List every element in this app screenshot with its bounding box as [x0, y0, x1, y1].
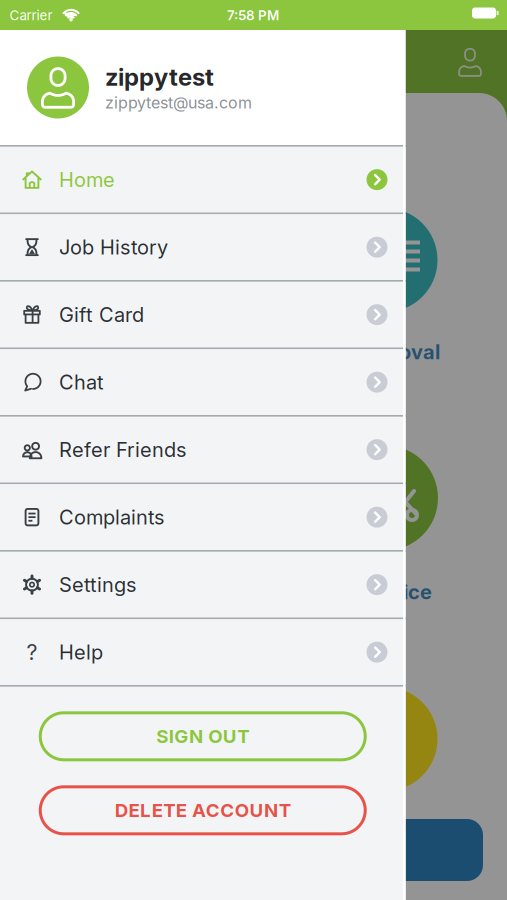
button[interactable]: ? — [0, 619, 405, 685]
staticText: Help — [59, 640, 103, 664]
staticText: Gift Card — [59, 303, 144, 326]
staticText: zippytest@usa.com — [105, 93, 252, 112]
button[interactable]: Chat — [0, 349, 405, 415]
staticText: ? — [26, 640, 37, 665]
staticText: Service — [358, 580, 432, 604]
button[interactable]: Home — [0, 147, 405, 212]
staticText: Home — [59, 168, 115, 191]
staticText: SIGN OUT — [156, 725, 249, 747]
button[interactable]: Complaints — [0, 484, 405, 550]
staticText: Complaints — [59, 505, 164, 529]
button[interactable]: SIGN OUT — [40, 713, 365, 760]
staticText: DELETE ACCOUNT — [115, 799, 291, 821]
button[interactable]: Refer Friends — [0, 417, 405, 482]
staticText: zippytest — [105, 63, 214, 91]
staticText: Refer Friends — [59, 438, 186, 461]
staticText: Approval — [350, 340, 440, 364]
button[interactable]: DELETE ACCOUNT — [40, 787, 365, 834]
button[interactable]: Settings — [0, 552, 405, 617]
staticText: Job History — [59, 235, 168, 259]
button[interactable]: Gift Card — [0, 282, 405, 347]
staticText: 7:58 PM — [227, 8, 279, 23]
staticText: Carrier — [9, 8, 52, 23]
button[interactable]: Profile — [458, 48, 481, 76]
staticText: Settings — [59, 573, 136, 596]
button[interactable]: Job History — [0, 214, 405, 280]
staticText: Chat — [59, 370, 104, 394]
button[interactable]: Request Service — [24, 819, 483, 881]
